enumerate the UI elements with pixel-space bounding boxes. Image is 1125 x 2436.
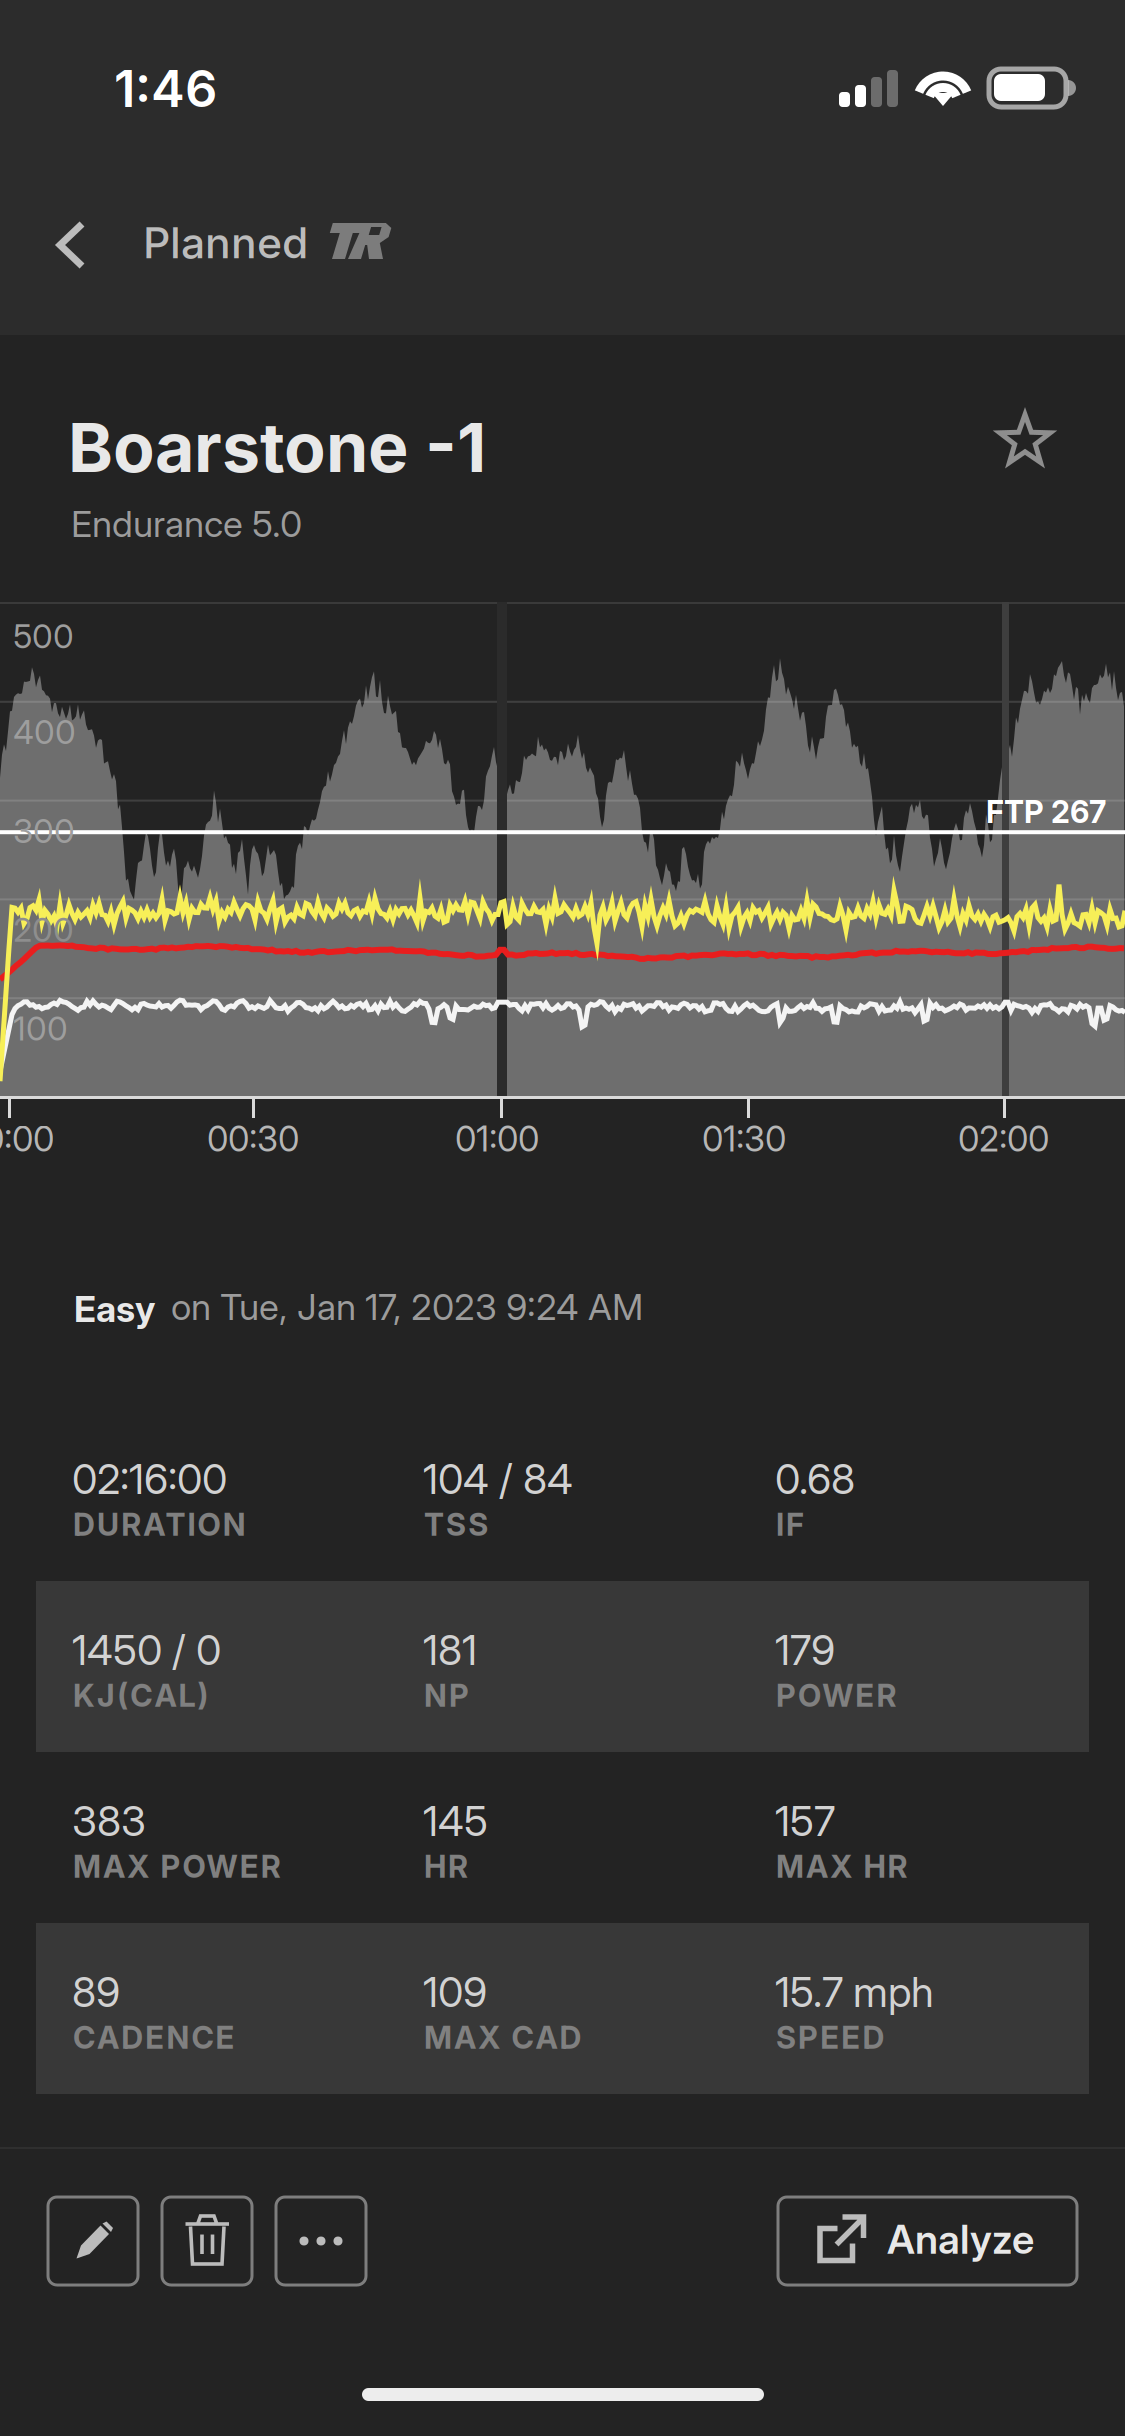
staticText: DURATION: [73, 1506, 246, 1543]
staticText: 500: [13, 616, 74, 656]
staticText: 15.7 mph: [775, 1967, 934, 2017]
staticText: 01:30: [702, 1118, 786, 1160]
staticText: 100: [13, 1008, 68, 1048]
staticText: HR: [424, 1848, 468, 1885]
staticText: KJ(CAL): [73, 1677, 209, 1714]
staticText: 01:00: [455, 1118, 539, 1160]
staticText: 400: [13, 712, 76, 752]
button[interactable]: Delete: [162, 2197, 252, 2285]
staticText: TSS: [424, 1506, 488, 1543]
staticText: 157: [775, 1796, 835, 1846]
staticText: Planned: [143, 217, 308, 269]
staticText: 1:46: [114, 58, 217, 119]
staticText: 00:30: [207, 1118, 299, 1160]
staticText: 02:16:00: [72, 1454, 227, 1504]
button[interactable]: Analyze: [778, 2197, 1077, 2285]
button[interactable]: Favorite: [970, 385, 1080, 495]
staticText: 00:00: [0, 1118, 54, 1160]
button[interactable]: Back to Planned: [0, 191, 400, 299]
staticText: MAX POWER: [73, 1848, 281, 1885]
staticText: CADENCE: [73, 2019, 235, 2056]
staticText: 1450 / 0: [72, 1625, 221, 1675]
staticText: 104 / 84: [423, 1454, 573, 1504]
staticText: 89: [72, 1967, 120, 2017]
staticText: Endurance 5.0: [71, 502, 302, 546]
staticText: 179: [775, 1625, 835, 1675]
staticText: 181: [423, 1625, 477, 1675]
staticText: MAX CAD: [424, 2019, 582, 2056]
staticText: POWER: [776, 1677, 896, 1714]
staticText: on Tue, Jan 17, 2023 9:24 AM: [171, 1285, 643, 1329]
staticText: 145: [423, 1796, 488, 1846]
button[interactable]: More options: [276, 2197, 366, 2285]
staticText: IF: [776, 1506, 804, 1543]
staticText: 383: [72, 1796, 146, 1846]
staticText: 02:00: [958, 1118, 1049, 1160]
staticText: Easy: [74, 1287, 155, 1331]
staticText: SPEED: [776, 2019, 884, 2056]
staticText: 300: [13, 811, 75, 851]
staticText: FTP 267: [986, 793, 1106, 830]
button[interactable]: Edit: [48, 2197, 138, 2285]
staticText: Boarstone -1: [68, 406, 486, 488]
staticText: 0.68: [775, 1454, 855, 1504]
staticText: NP: [424, 1677, 469, 1714]
staticText: Analyze: [887, 2215, 1034, 2263]
staticText: 109: [423, 1967, 487, 2017]
staticText: 200: [13, 909, 74, 950]
staticText: MAX HR: [776, 1848, 907, 1885]
